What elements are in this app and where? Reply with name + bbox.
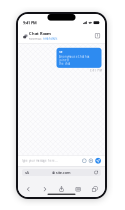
button[interactable]: Share — [53, 185, 70, 194]
button[interactable]: Bookmarks — [70, 185, 86, 194]
button[interactable]: Attach — [89, 158, 93, 163]
button[interactable]: Back — [20, 185, 37, 194]
staticText: Chat Room — [29, 31, 51, 36]
staticText: Room ID: — [29, 37, 42, 40]
staticText: nm5hdk3s — [43, 37, 57, 40]
button[interactable]: Emoji — [82, 158, 87, 163]
button[interactable]: Reload — [91, 169, 101, 176]
button[interactable]: Tabs — [86, 185, 103, 194]
staticText: aA — [24, 170, 29, 175]
button[interactable]: Forward — [37, 185, 53, 194]
staticText: Type your message here... — [22, 159, 58, 162]
staticText: 9:41 PM — [89, 69, 101, 72]
staticText: site.com — [56, 170, 71, 175]
button[interactable]: Page settings — [22, 169, 32, 176]
button[interactable]: Share — [94, 33, 100, 39]
staticText: Anonymous eChat has joined the chat — [59, 55, 89, 65]
staticText: Me — [59, 50, 63, 54]
button[interactable]: Send — [95, 158, 101, 164]
staticText: 9:41 PM — [23, 20, 37, 25]
